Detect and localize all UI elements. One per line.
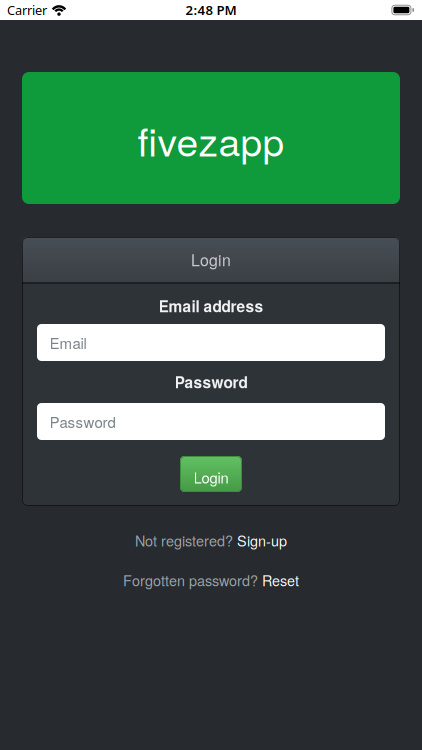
staticText: Email: [49, 332, 86, 353]
staticText: Carrier: [7, 1, 47, 19]
staticText: Password: [174, 371, 247, 393]
staticText: Login: [191, 248, 231, 271]
staticText: fivezapp: [137, 111, 284, 167]
staticText: Email address: [158, 295, 263, 317]
button[interactable]: Password: [37, 403, 385, 440]
button[interactable]: Login: [180, 456, 242, 492]
button[interactable]: Sign-up: [237, 530, 287, 551]
button[interactable]: Reset: [262, 570, 299, 590]
staticText: Sign-up: [237, 530, 287, 551]
staticText: Forgotten password?: [123, 570, 262, 590]
staticText: 2:48 PM: [185, 1, 236, 19]
staticText: Login: [193, 466, 228, 488]
staticText: Reset: [262, 570, 299, 590]
staticText: Not registered?: [135, 530, 237, 551]
button[interactable]: Email: [37, 324, 385, 361]
staticText: Password: [49, 411, 115, 432]
